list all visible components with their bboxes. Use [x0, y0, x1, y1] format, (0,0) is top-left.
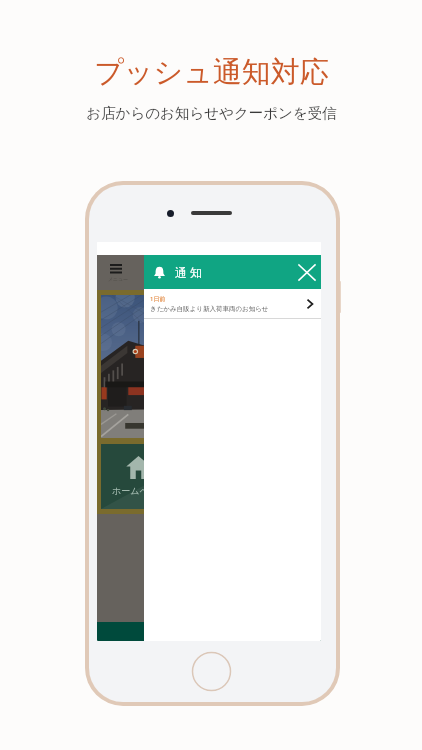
staticText: 通 知: [175, 264, 203, 280]
staticText: お店からのお知らせやクーポンを受信: [86, 104, 337, 122]
button[interactable]: 通 知: [144, 255, 321, 289]
button[interactable]: 1日前: [144, 289, 321, 318]
staticText: きたかみ自販より新入荷車両のお知らせ: [150, 305, 269, 313]
staticText: メニュー: [108, 276, 129, 282]
staticText: 1日前: [150, 295, 166, 303]
staticText: プッシュ通知対応: [94, 54, 329, 91]
staticText: ホームページ: [112, 485, 167, 496]
button[interactable]: Close: [293, 258, 321, 286]
